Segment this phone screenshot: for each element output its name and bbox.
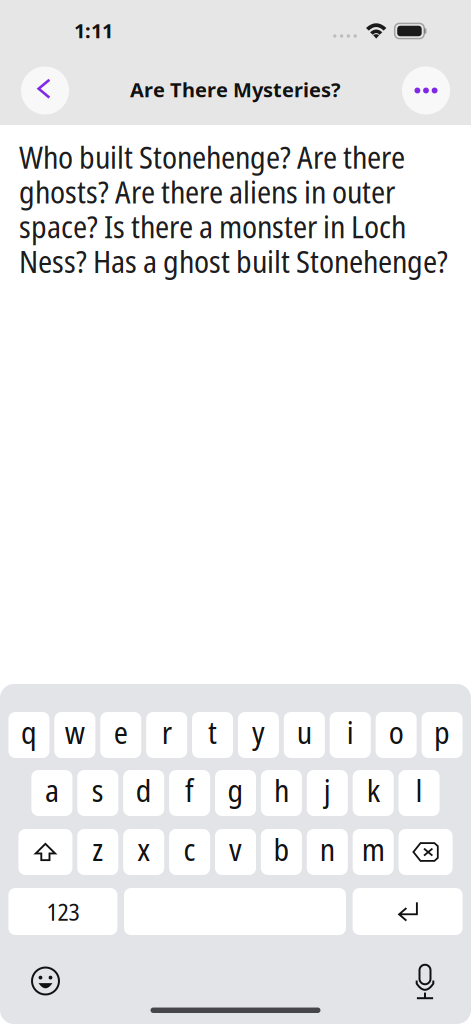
button[interactable]: b	[261, 829, 302, 875]
button[interactable]: u	[284, 712, 325, 758]
button[interactable]: v	[215, 829, 256, 875]
button[interactable]: k	[353, 770, 394, 816]
staticText: v	[229, 828, 242, 870]
button[interactable]: y	[238, 712, 279, 758]
staticText: j	[324, 769, 331, 811]
button[interactable]: g	[215, 770, 256, 816]
button[interactable]: More options	[402, 66, 450, 114]
staticText: h	[274, 769, 289, 811]
staticText: z	[92, 828, 103, 870]
staticText: a	[45, 769, 59, 811]
button[interactable]: i	[330, 712, 371, 758]
staticText: x	[137, 828, 150, 870]
staticText: i	[347, 711, 354, 753]
button[interactable]: j	[307, 770, 348, 816]
staticText: n	[320, 828, 335, 870]
button[interactable]: Dictate	[405, 961, 445, 1001]
button[interactable]	[353, 888, 463, 935]
staticText: u	[297, 711, 312, 753]
staticText: Who built Stonehenge? Are there ghosts? …	[19, 136, 448, 282]
button[interactable]: w	[54, 712, 95, 758]
staticText: f	[185, 769, 194, 811]
button[interactable]: c	[169, 829, 210, 875]
staticText: p	[434, 711, 450, 753]
button[interactable]: a	[31, 770, 72, 816]
button[interactable]: d	[123, 770, 164, 816]
staticText: o	[389, 711, 404, 753]
button[interactable]: Back	[21, 66, 69, 114]
button[interactable]: n	[307, 829, 348, 875]
staticText: t	[208, 711, 217, 753]
staticText: m	[362, 828, 385, 870]
button[interactable]: e	[100, 712, 141, 758]
staticText: d	[136, 769, 152, 811]
staticText: e	[114, 711, 128, 753]
button[interactable]: q	[8, 712, 49, 758]
button[interactable]: m	[353, 829, 394, 875]
button[interactable]: s	[77, 770, 118, 816]
staticText: 1:11	[74, 17, 113, 44]
staticText: c	[184, 828, 196, 870]
button[interactable]: x	[123, 829, 164, 875]
button[interactable]	[18, 829, 72, 875]
staticText: k	[367, 769, 380, 811]
button[interactable]: l	[399, 770, 440, 816]
button[interactable]: h	[261, 770, 302, 816]
staticText: s	[92, 769, 104, 811]
staticText: 123	[46, 895, 79, 928]
button[interactable]: 123	[8, 888, 117, 935]
staticText: Are There Mysteries?	[130, 76, 341, 103]
staticText: g	[227, 769, 243, 811]
button[interactable]: f	[169, 770, 210, 816]
button[interactable]: t	[192, 712, 233, 758]
staticText: r	[162, 711, 172, 753]
staticText: l	[416, 769, 423, 811]
button[interactable]: p	[421, 712, 462, 758]
button[interactable]: z	[77, 829, 118, 875]
staticText: q	[21, 711, 37, 753]
button[interactable]: r	[146, 712, 187, 758]
staticText: y	[252, 711, 265, 753]
button[interactable]	[399, 829, 453, 875]
staticText: w	[65, 711, 85, 753]
staticText: b	[273, 828, 289, 870]
button[interactable]: Emoji keyboard	[25, 961, 65, 1001]
button[interactable]: o	[376, 712, 417, 758]
